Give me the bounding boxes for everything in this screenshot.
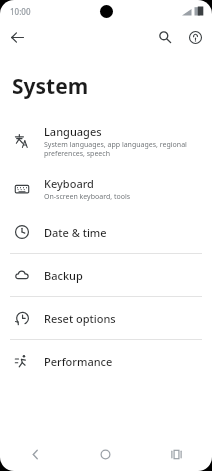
staticText: Languages xyxy=(44,124,102,139)
staticText: Backup xyxy=(44,268,83,283)
button[interactable]: Keyboard xyxy=(0,167,212,211)
button[interactable]: Backup xyxy=(0,254,212,296)
staticText: System languages, app languages, regiona… xyxy=(44,140,200,158)
staticText: Reset options xyxy=(44,311,116,326)
button[interactable]: Languages xyxy=(0,115,212,167)
button[interactable]: Reset options xyxy=(0,297,212,339)
button[interactable]: Back xyxy=(4,24,30,50)
staticText: Performance xyxy=(44,354,113,369)
staticText: 10:00 xyxy=(10,6,31,17)
button[interactable]: Back xyxy=(0,441,70,467)
staticText: Keyboard xyxy=(44,176,94,191)
staticText: System xyxy=(12,72,89,101)
button[interactable]: Help xyxy=(182,24,208,50)
button[interactable]: Performance xyxy=(0,340,212,382)
button[interactable]: Recents xyxy=(141,441,212,467)
button[interactable]: Date & time xyxy=(0,211,212,253)
staticText: On-screen keyboard, tools xyxy=(44,192,131,202)
staticText: Date & time xyxy=(44,225,107,240)
button[interactable]: Home xyxy=(70,441,141,467)
button[interactable]: Search xyxy=(152,24,178,50)
